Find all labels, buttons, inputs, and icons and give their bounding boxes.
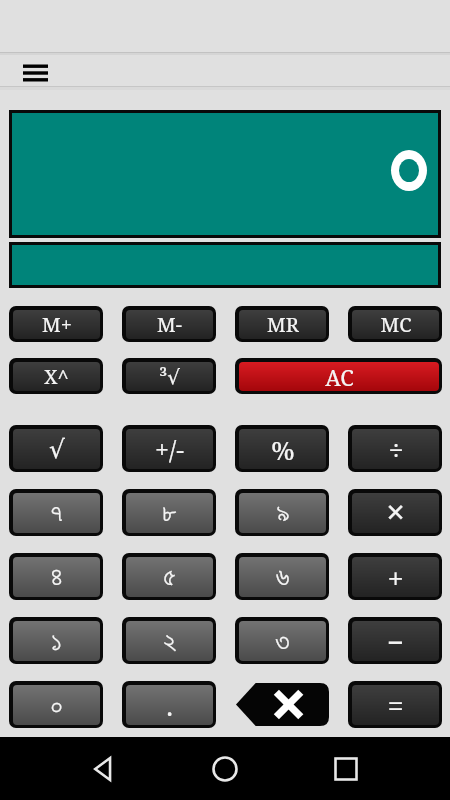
button[interactable]: = (348, 681, 442, 728)
button[interactable]: M+ (9, 306, 103, 342)
button[interactable]: Back (80, 745, 128, 793)
staticText: ২ (163, 628, 177, 655)
button[interactable]: ১ (9, 617, 103, 664)
staticText: AC (325, 362, 354, 391)
staticText: MR (267, 311, 299, 338)
staticText: ৬ (275, 564, 290, 591)
button[interactable]: ৪ (9, 553, 103, 600)
button[interactable]: ✕ (348, 489, 442, 536)
staticText: MC (380, 311, 412, 338)
staticText: ১ (51, 628, 62, 655)
button[interactable]: ৬ (235, 553, 329, 600)
button[interactable]: ৫ (122, 553, 216, 600)
staticText: ৮ (162, 500, 177, 527)
button[interactable]: Home (201, 745, 249, 793)
staticText: ÷ (388, 431, 404, 468)
button[interactable]: ৭ (9, 489, 103, 536)
button[interactable]: ৮ (122, 489, 216, 536)
staticText: . (166, 687, 173, 724)
staticText: +/- (155, 432, 184, 466)
button[interactable]: − (348, 617, 442, 664)
button[interactable]: . (122, 681, 216, 728)
staticText: − (387, 622, 404, 661)
staticText: √ (49, 435, 65, 464)
staticText: ³√ (159, 363, 180, 390)
button[interactable]: X^ (9, 358, 103, 394)
button[interactable]: AC (235, 358, 442, 394)
button[interactable]: ³√ (122, 358, 216, 394)
button[interactable]: % (235, 425, 329, 472)
staticText: ৪ (50, 564, 63, 591)
staticText: ৯ (276, 500, 290, 527)
staticText: X^ (44, 363, 69, 390)
staticText: % (271, 432, 295, 467)
staticText: M- (157, 311, 182, 338)
staticText: ✕ (385, 499, 406, 527)
button[interactable]: ৩ (235, 617, 329, 664)
staticText: + (387, 558, 404, 597)
button[interactable]: ০ (9, 681, 103, 728)
button[interactable]: MC (348, 306, 442, 342)
button[interactable]: Backspace (235, 681, 329, 728)
staticText: ৫ (163, 564, 176, 591)
staticText: ০ (50, 692, 63, 719)
button[interactable]: ২ (122, 617, 216, 664)
button[interactable]: + (348, 553, 442, 600)
button[interactable]: +/- (122, 425, 216, 472)
button[interactable]: ৯ (235, 489, 329, 536)
staticText: ৩ (275, 628, 290, 655)
staticText: = (387, 686, 404, 725)
button[interactable]: √ (9, 425, 103, 472)
staticText: ৭ (50, 500, 63, 527)
button[interactable]: M- (122, 306, 216, 342)
button[interactable]: MR (235, 306, 329, 342)
button[interactable]: Recents (322, 745, 370, 793)
staticText: M+ (42, 311, 72, 338)
button[interactable]: Menu (11, 56, 59, 88)
button[interactable]: ÷ (348, 425, 442, 472)
